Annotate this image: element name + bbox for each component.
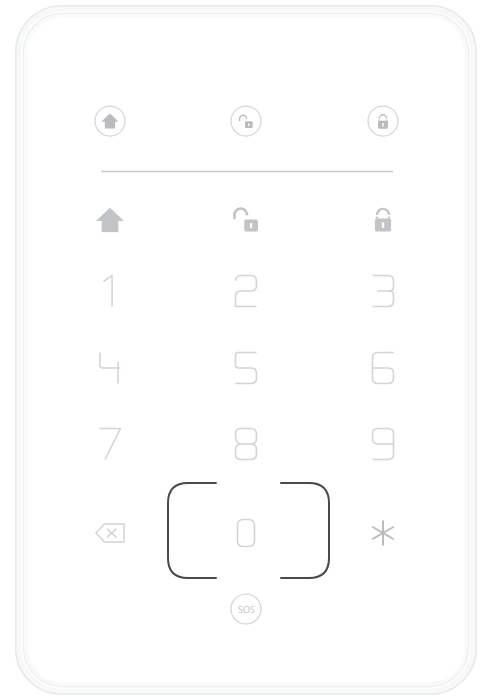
- button[interactable]: 4: [81, 339, 139, 397]
- button[interactable]: 6: [354, 339, 412, 397]
- button[interactable]: 2: [217, 262, 275, 320]
- button[interactable]: Asterisk: [354, 504, 412, 562]
- button[interactable]: Arm away: [82, 191, 138, 247]
- button[interactable]: 5: [217, 339, 275, 397]
- button[interactable]: Disarm status: [230, 105, 262, 137]
- button[interactable]: 3: [354, 262, 412, 320]
- button[interactable]: Armed status: [367, 105, 399, 137]
- button[interactable]: Backspace: [81, 504, 139, 562]
- button[interactable]: Home status: [94, 105, 126, 137]
- button[interactable]: Arm: [355, 191, 411, 247]
- button[interactable]: 9: [354, 415, 412, 473]
- button[interactable]: 1: [81, 262, 139, 320]
- staticText: SOS: [238, 603, 255, 615]
- button[interactable]: Disarm: [218, 191, 274, 247]
- button[interactable]: 0: [217, 504, 275, 562]
- button[interactable]: 7: [81, 415, 139, 473]
- button[interactable]: SOS emergency: [230, 593, 262, 625]
- button[interactable]: 8: [217, 415, 275, 473]
